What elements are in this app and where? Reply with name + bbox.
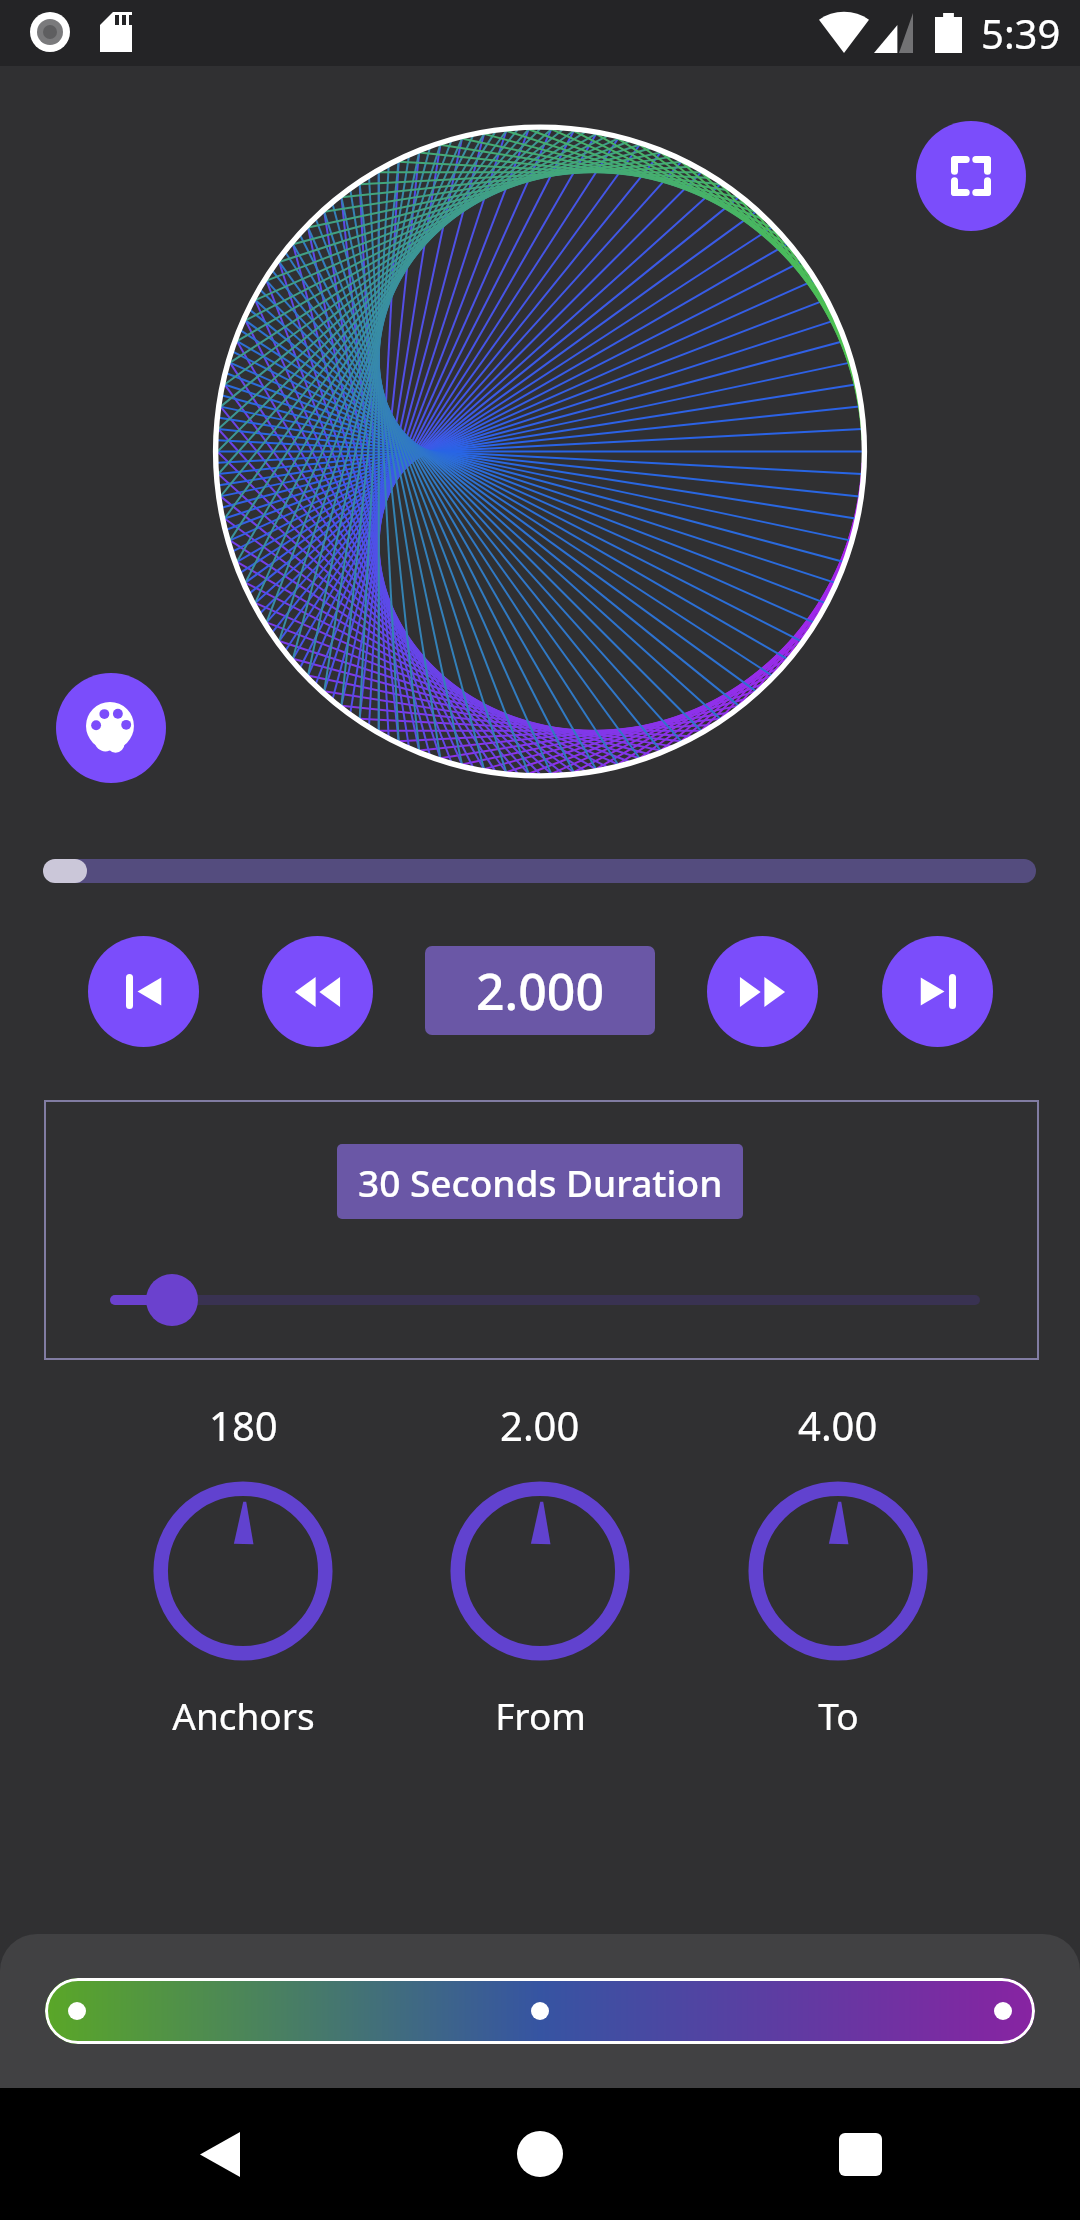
- button[interactable]: 30 Seconds Duration: [337, 1144, 743, 1219]
- button[interactable]: 2.000: [425, 946, 655, 1035]
- staticText: Anchors: [172, 1690, 315, 1740]
- button[interactable]: Rewind: [262, 936, 373, 1047]
- staticText: 4.00: [798, 1398, 878, 1452]
- staticText: 2.000: [476, 957, 604, 1025]
- staticText: 5:39: [981, 6, 1061, 60]
- button[interactable]: Colour palette: [56, 673, 166, 783]
- staticText: To: [818, 1690, 859, 1740]
- button[interactable]: Colour gradient: [45, 1978, 1035, 2044]
- button[interactable]: Home: [480, 2094, 600, 2214]
- staticText: 30 Seconds Duration: [358, 1157, 723, 1207]
- button[interactable]: Duration slider: [110, 1272, 980, 1328]
- staticText: 2.00: [500, 1398, 580, 1452]
- staticText: From: [495, 1690, 586, 1740]
- button[interactable]: Skip to end: [882, 936, 993, 1047]
- button[interactable]: Anchors: [93, 1392, 393, 1744]
- button[interactable]: Recent apps: [800, 2094, 920, 2214]
- button[interactable]: Skip to start: [88, 936, 199, 1047]
- button[interactable]: From: [390, 1392, 690, 1744]
- button[interactable]: Back: [160, 2094, 280, 2214]
- button[interactable]: Fullscreen: [916, 121, 1026, 231]
- button[interactable]: Fast forward: [707, 936, 818, 1047]
- button[interactable]: To: [688, 1392, 988, 1744]
- staticText: 180: [209, 1398, 278, 1452]
- button[interactable]: Animation progress: [30, 840, 1050, 902]
